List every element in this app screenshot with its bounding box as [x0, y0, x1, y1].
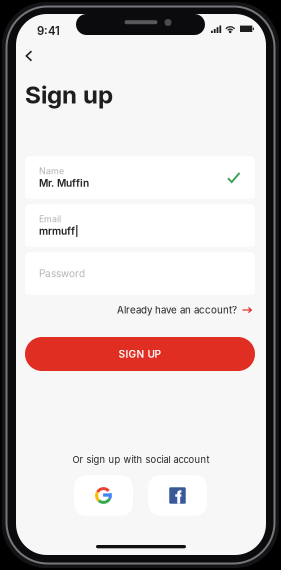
- staticText: mrmuff|: [39, 225, 79, 237]
- button[interactable]: Sign up with Facebook: [148, 475, 207, 516]
- staticText: Name: [39, 166, 64, 176]
- staticText: Already have an account?: [117, 304, 237, 316]
- button[interactable]: Back: [18, 44, 40, 68]
- staticText: 9:41: [37, 24, 60, 38]
- staticText: Password: [39, 267, 85, 280]
- staticText: Or sign up with social account: [72, 454, 209, 465]
- staticText: Mr. Muffin: [39, 177, 89, 189]
- button[interactable]: Already have an account?: [117, 302, 253, 318]
- button[interactable]: Sign up with Google: [74, 475, 133, 516]
- staticText: Email: [39, 214, 61, 224]
- staticText: SIGN UP: [118, 348, 161, 360]
- button[interactable]: SIGN UP: [25, 337, 255, 371]
- staticText: Sign up: [25, 80, 113, 109]
